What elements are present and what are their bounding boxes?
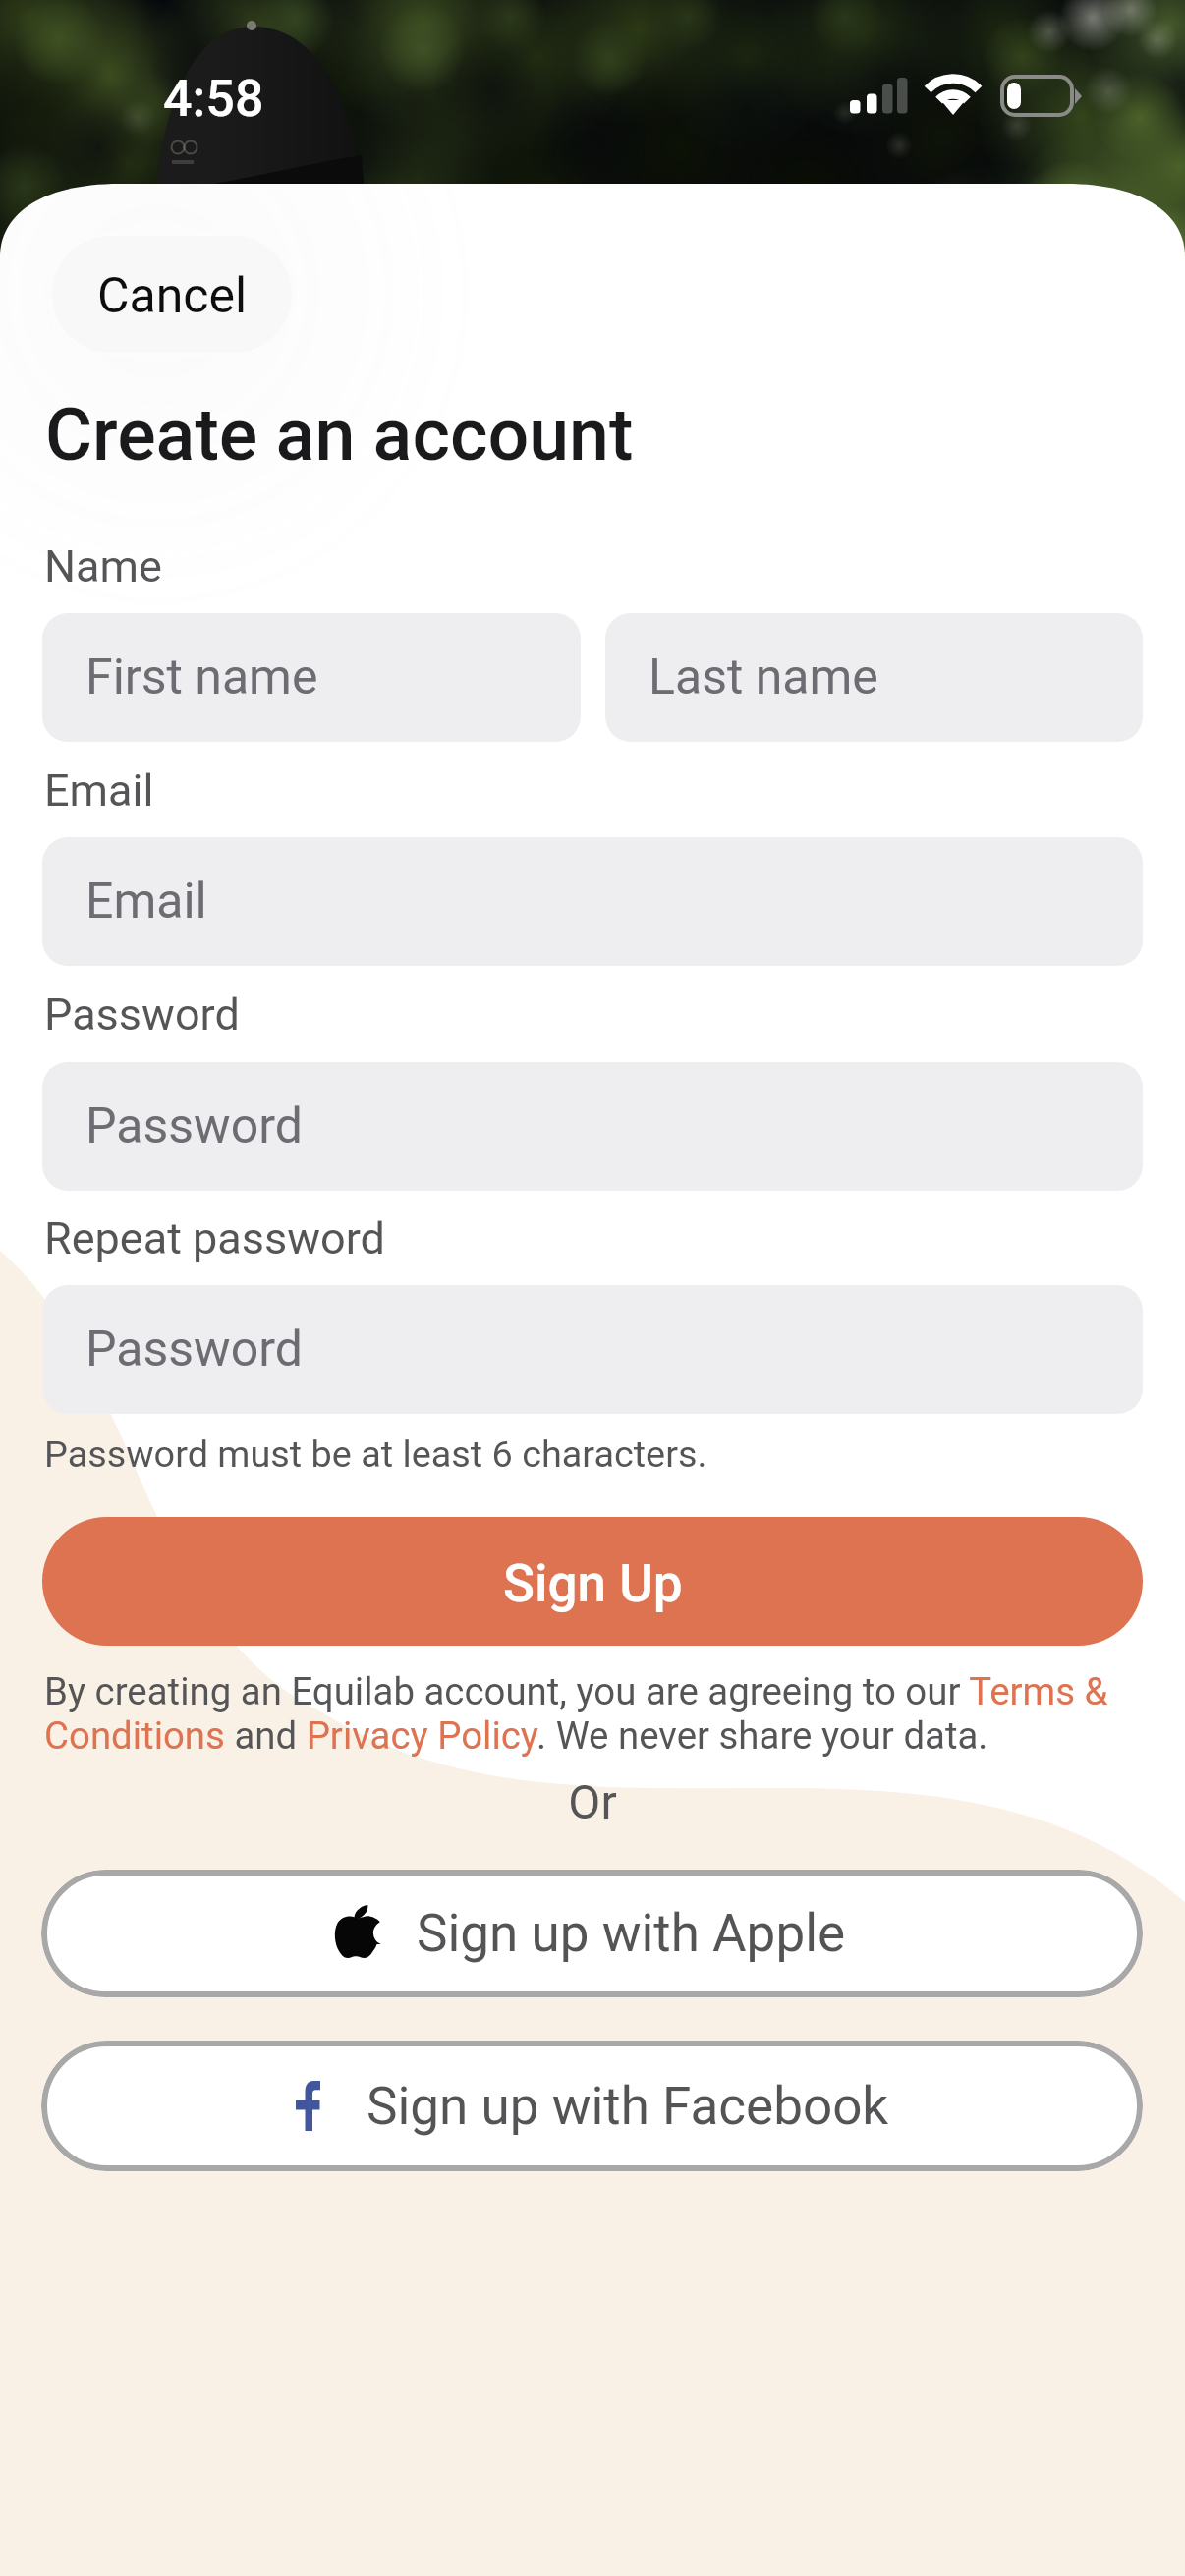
staticText: Repeat password bbox=[44, 1212, 385, 1264]
staticText: Password must be at least 6 characters. bbox=[44, 1432, 707, 1476]
staticText: Create an account bbox=[45, 393, 634, 477]
staticText: Password bbox=[85, 1097, 303, 1155]
staticText: Sign up with Facebook bbox=[367, 2076, 889, 2137]
button[interactable]: Sign up with Apple bbox=[41, 1870, 1143, 1997]
button[interactable]: Sign Up bbox=[42, 1517, 1143, 1646]
button[interactable]: Last name bbox=[605, 613, 1143, 742]
button[interactable]: Password bbox=[42, 1285, 1143, 1414]
button[interactable]: Privacy Policy bbox=[304, 1714, 534, 1762]
staticText: Sign up with Apple bbox=[417, 1903, 846, 1964]
button[interactable]: Terms & Conditions bbox=[44, 1714, 224, 1762]
staticText: Name bbox=[44, 540, 162, 592]
staticText: Cancel bbox=[97, 267, 248, 325]
button[interactable]: Password bbox=[42, 1062, 1143, 1191]
staticText: Sign Up bbox=[503, 1553, 683, 1614]
button[interactable]: Cancel bbox=[48, 232, 296, 357]
button[interactable]: Sign up with Facebook bbox=[41, 2041, 1143, 2171]
staticText: 4:58 bbox=[163, 69, 264, 129]
button[interactable]: Email bbox=[42, 837, 1143, 966]
staticText: Or bbox=[0, 1774, 1185, 1829]
staticText: Email bbox=[44, 764, 154, 816]
staticText: By creating an Equilab account, you are … bbox=[44, 1669, 1147, 1759]
staticText: Password bbox=[44, 988, 240, 1040]
button[interactable]: Terms & Conditions bbox=[960, 1669, 1099, 1716]
staticText: Last name bbox=[649, 648, 878, 706]
staticText: Password bbox=[85, 1320, 303, 1378]
button[interactable]: First name bbox=[42, 613, 581, 742]
staticText: First name bbox=[85, 648, 318, 706]
staticText: Email bbox=[85, 872, 207, 930]
